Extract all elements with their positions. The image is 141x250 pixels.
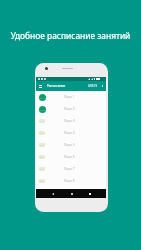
button[interactable]: 13:10 [36, 127, 106, 139]
staticText: 13:10 [39, 131, 45, 135]
staticText: 8:00 [40, 96, 45, 99]
staticText: Удобное расписание занятий [0, 30, 141, 41]
button[interactable]: 9:40 [36, 103, 106, 115]
staticText: 11:30 [39, 119, 45, 123]
staticText: Пара 7 [64, 167, 75, 171]
button[interactable]: Back [50, 191, 55, 196]
button[interactable]: Home [69, 191, 74, 196]
staticText: 18:20 [39, 167, 45, 171]
staticText: Пара 2 [64, 107, 75, 111]
staticText: 9:40 [40, 108, 45, 111]
button[interactable]: Open menu [39, 85, 42, 88]
staticText: 16:40 [39, 155, 45, 159]
button[interactable]: 20:00 [36, 175, 106, 187]
staticText: Пара 3 [64, 119, 75, 123]
staticText: 15:00 [39, 143, 45, 147]
button[interactable]: 8:00 [36, 91, 106, 103]
button[interactable]: 16:40 [36, 151, 106, 163]
staticText: Пара 1 [64, 95, 75, 99]
staticText: Пара 4 [64, 131, 75, 135]
staticText: 4.09.19 [88, 84, 98, 88]
staticText: 20:00 [39, 179, 45, 183]
staticText: Пара 5 [64, 143, 75, 147]
staticText: Пара 6 [64, 155, 75, 159]
staticText: Расписание [47, 84, 66, 88]
button[interactable]: 11:30 [36, 115, 106, 127]
button[interactable]: 15:00 [36, 139, 106, 151]
button[interactable]: More options [101, 85, 103, 87]
button[interactable]: 18:20 [36, 163, 106, 175]
button[interactable]: Recents [87, 191, 92, 196]
staticText: Пара 8 [64, 179, 75, 183]
